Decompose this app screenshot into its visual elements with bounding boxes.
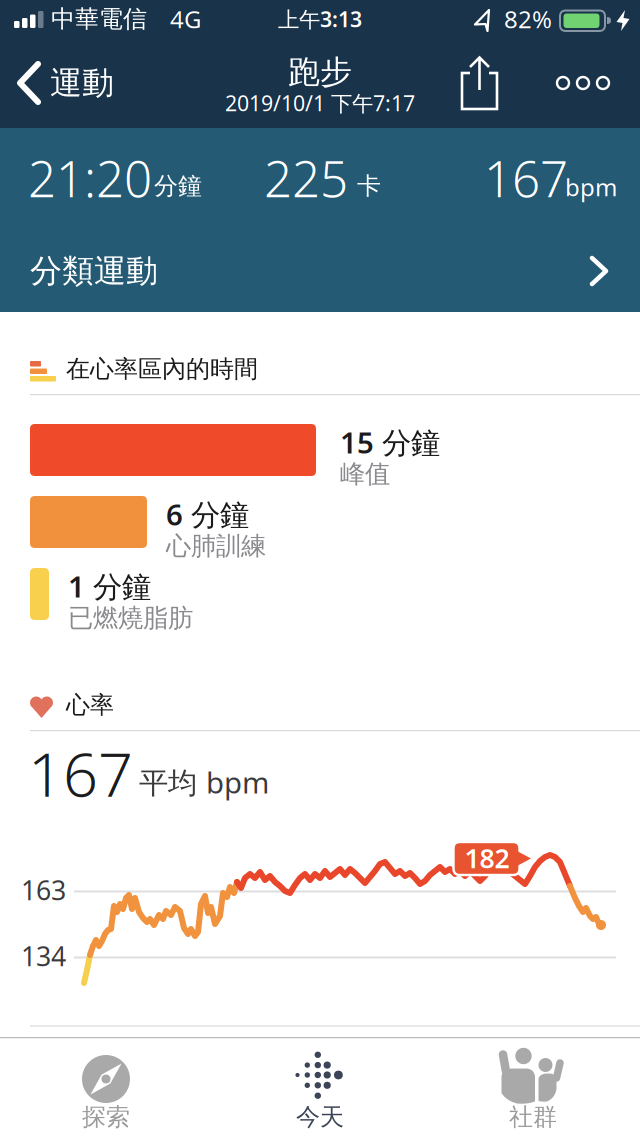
button[interactable]: 社群 — [487, 1037, 579, 1136]
staticText: 分鐘 — [154, 171, 202, 201]
staticText: 1 分鐘 — [68, 566, 151, 605]
staticText: 峰值 — [340, 458, 390, 489]
staticText: 今天 — [296, 1102, 344, 1132]
staticText: 上午3:13 — [278, 5, 362, 33]
staticText: 4G — [170, 3, 201, 35]
staticText: 分類運動 — [30, 251, 158, 291]
staticText: 在心率區內的時間 — [66, 354, 258, 384]
staticText: 中華電信 — [51, 4, 147, 34]
staticText: 跑步 — [288, 52, 352, 92]
staticText: 卡 — [357, 171, 381, 201]
staticText: 運動 — [50, 63, 114, 103]
staticText: 163 — [21, 872, 66, 908]
staticText: 心肺訓練 — [166, 530, 266, 561]
button[interactable]: 返回運動 — [0, 40, 130, 128]
staticText: 平均 bpm — [139, 762, 269, 801]
staticText: 225 — [264, 145, 348, 211]
staticText: 82% — [504, 3, 552, 35]
button[interactable]: 分享 — [0, 40, 640, 128]
staticText: 134 — [21, 938, 66, 974]
staticText: 已燃燒脂肪 — [68, 602, 193, 633]
staticText: bpm — [565, 171, 617, 203]
staticText: 探索 — [82, 1102, 130, 1132]
staticText: 15 分鐘 — [340, 422, 440, 461]
button[interactable]: 探索 — [60, 1037, 152, 1136]
staticText: 心率 — [66, 690, 114, 720]
button[interactable]: 今天 — [274, 1037, 366, 1136]
staticText: 167 — [484, 145, 568, 211]
staticText: 167 — [28, 732, 133, 814]
staticText: 社群 — [509, 1102, 557, 1132]
staticText: 6 分鐘 — [166, 494, 249, 533]
staticText: 2019/10/1 下午7:17 — [225, 89, 415, 117]
button[interactable]: 更多選項 — [0, 40, 640, 128]
button[interactable]: 分類運動 — [0, 128, 640, 202]
staticText: 182 — [464, 840, 509, 876]
staticText: 21:20 — [28, 145, 152, 211]
